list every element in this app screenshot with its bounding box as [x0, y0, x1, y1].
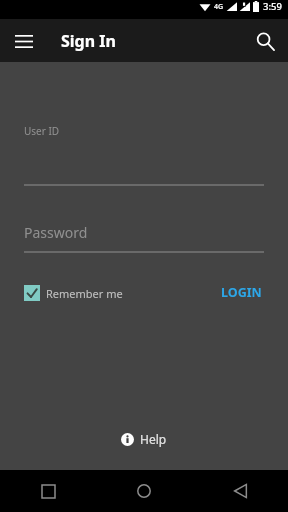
button[interactable]: Search [248, 24, 282, 58]
staticText: 4G [214, 2, 224, 12]
button[interactable]: Back [192, 470, 288, 512]
button[interactable]: Password [24, 223, 264, 253]
button[interactable]: LOGIN [217, 280, 266, 305]
staticText: Password [24, 223, 88, 242]
staticText: Help [140, 431, 167, 447]
button[interactable] [24, 168, 264, 186]
button[interactable]: Help [115, 425, 173, 453]
staticText: Remember me [46, 286, 123, 301]
button[interactable]: Home [96, 470, 192, 512]
staticText: Sign In [61, 30, 116, 52]
staticText: 3:59 [263, 0, 282, 13]
staticText: LOGIN [221, 284, 262, 301]
staticText: User ID [24, 124, 60, 138]
button[interactable]: Open navigation menu [8, 25, 40, 57]
button[interactable]: Recent apps [0, 470, 96, 512]
button[interactable]: Remember me [24, 285, 123, 301]
